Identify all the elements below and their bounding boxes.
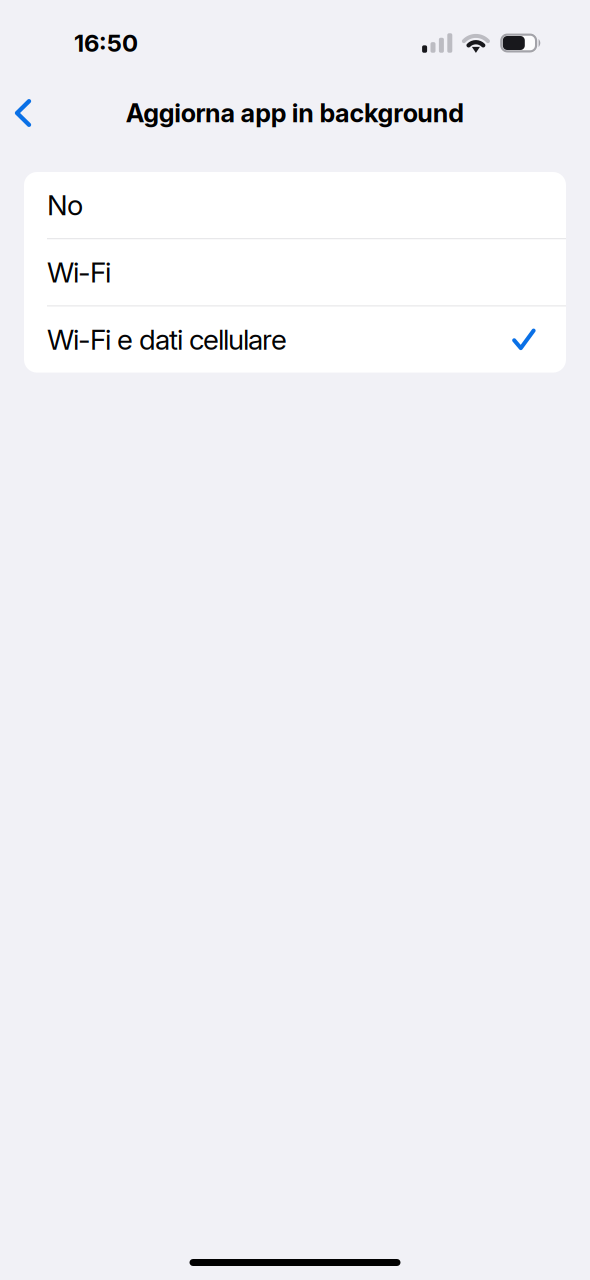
button[interactable]: Indietro	[0, 86, 46, 140]
button[interactable]: Wi-Fi e dati cellulare	[24, 306, 566, 373]
staticText: Aggiorna app in background	[126, 98, 464, 128]
staticText: Wi-Fi e dati cellulare	[47, 323, 287, 356]
staticText: Wi-Fi	[47, 255, 111, 289]
button[interactable]: Wi-Fi	[24, 239, 566, 305]
button[interactable]: No	[24, 172, 566, 238]
staticText: 16:50	[74, 28, 138, 57]
staticText: No	[47, 188, 83, 222]
